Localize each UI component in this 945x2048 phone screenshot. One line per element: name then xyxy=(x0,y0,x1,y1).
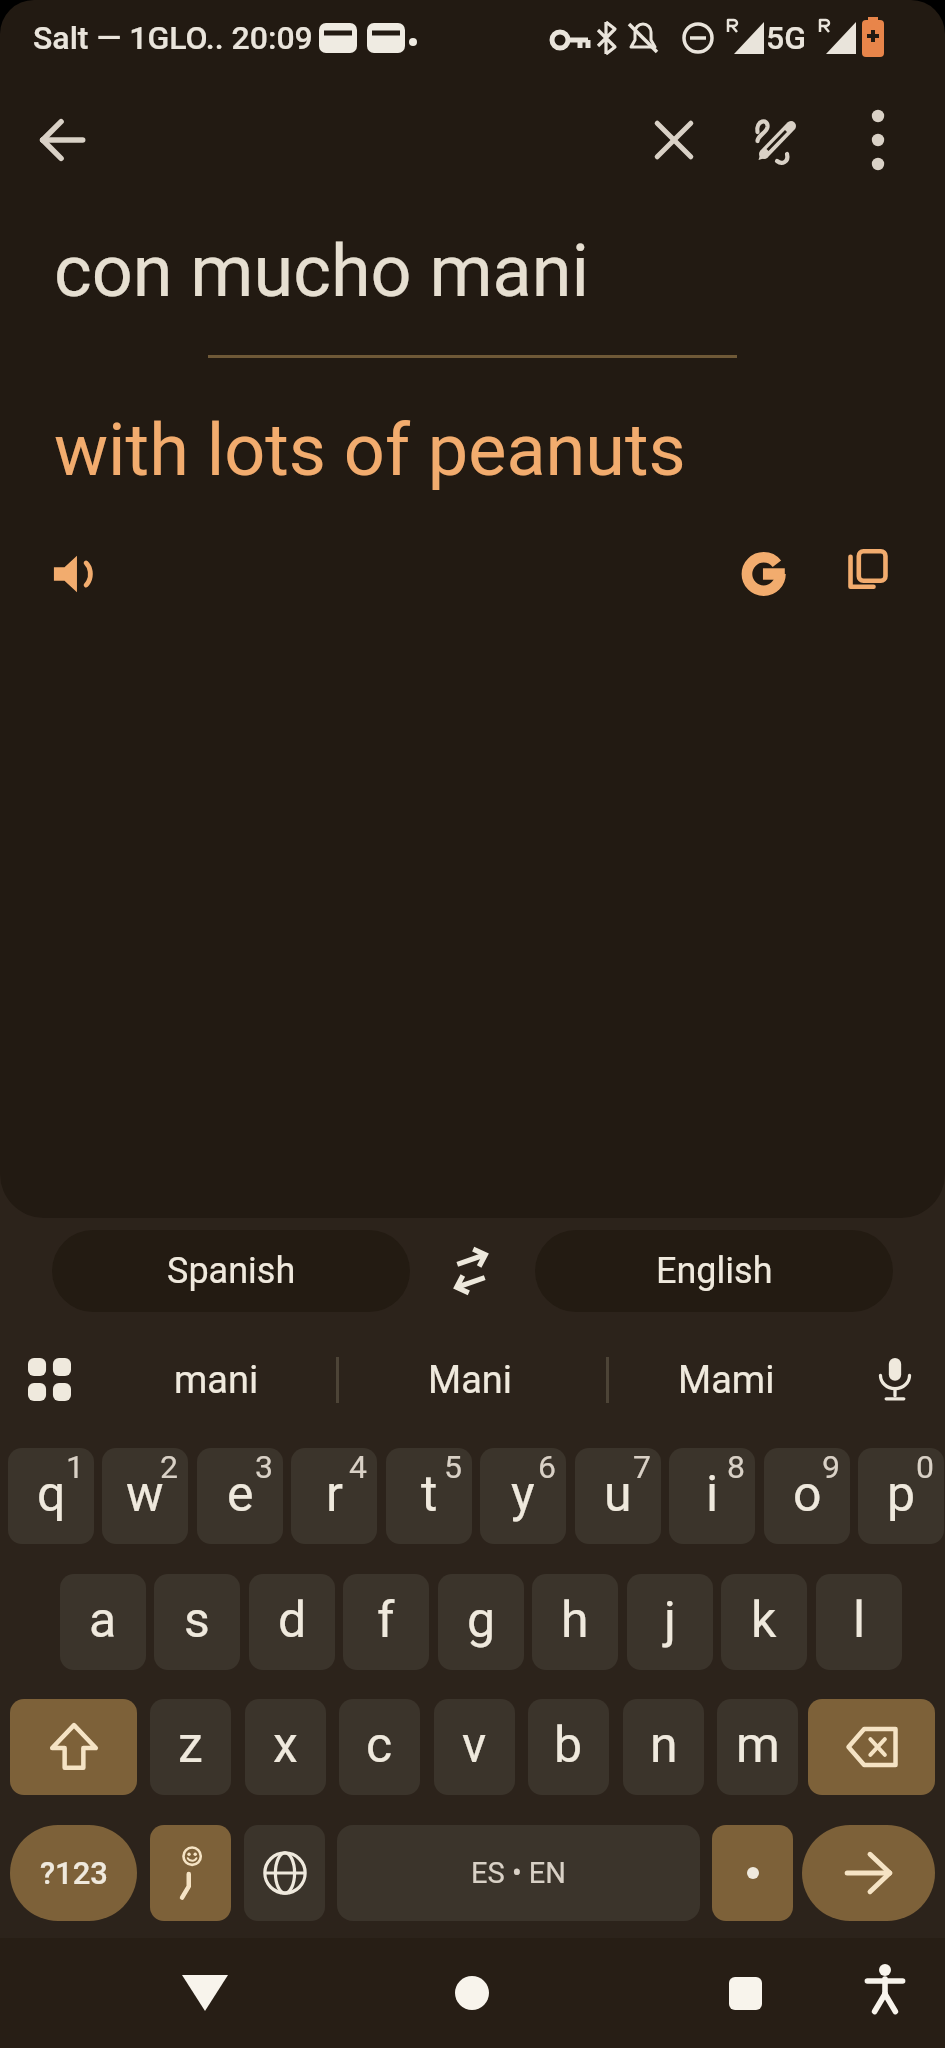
staticText: w xyxy=(126,1465,164,1524)
button[interactable]: h xyxy=(532,1574,618,1670)
button[interactable]: ES • EN xyxy=(337,1825,700,1921)
button[interactable]: s xyxy=(154,1574,240,1670)
staticText: s xyxy=(184,1591,210,1650)
button[interactable] xyxy=(437,1958,507,2028)
button[interactable] xyxy=(38,536,114,612)
staticText: Salt — 1GLO.. 20:09 xyxy=(33,19,313,57)
staticText: d xyxy=(278,1591,307,1650)
staticText: v xyxy=(462,1716,487,1775)
staticText: x xyxy=(273,1716,298,1775)
staticText: Mami xyxy=(678,1358,775,1403)
staticText: q xyxy=(37,1465,66,1524)
staticText: g xyxy=(467,1591,496,1650)
button[interactable]: k xyxy=(721,1574,807,1670)
button[interactable]: English xyxy=(535,1230,893,1312)
staticText: 4 xyxy=(349,1448,367,1486)
staticText: u xyxy=(604,1465,632,1524)
button[interactable]: p xyxy=(858,1448,944,1544)
button[interactable]: z xyxy=(150,1699,231,1795)
button[interactable] xyxy=(438,1240,504,1302)
button[interactable]: Mami xyxy=(620,1345,832,1415)
button[interactable]: o xyxy=(764,1448,850,1544)
button[interactable] xyxy=(24,102,100,178)
button[interactable]: f xyxy=(343,1574,429,1670)
button[interactable] xyxy=(850,1954,920,2024)
button[interactable] xyxy=(840,102,916,178)
button[interactable]: u xyxy=(575,1448,661,1544)
staticText: k xyxy=(751,1591,777,1650)
button[interactable]: i xyxy=(669,1448,755,1544)
button[interactable]: j xyxy=(627,1574,713,1670)
staticText: 2 xyxy=(160,1448,178,1486)
button[interactable]: m xyxy=(717,1699,798,1795)
staticText: r xyxy=(326,1465,343,1524)
staticText: ?123 xyxy=(40,1855,108,1891)
button[interactable]: c xyxy=(339,1699,420,1795)
button[interactable]: t xyxy=(386,1448,472,1544)
button[interactable] xyxy=(10,1699,137,1795)
button[interactable] xyxy=(738,102,814,178)
staticText: 5 xyxy=(444,1448,462,1486)
staticText: t xyxy=(421,1465,438,1524)
button[interactable] xyxy=(830,534,906,610)
button[interactable] xyxy=(170,1958,240,2028)
button[interactable]: a xyxy=(60,1574,146,1670)
button[interactable]: Mani xyxy=(364,1345,576,1415)
staticText: English xyxy=(656,1250,773,1292)
staticText: 0 xyxy=(916,1448,934,1486)
staticText: mani xyxy=(174,1358,259,1403)
staticText: p xyxy=(887,1465,916,1524)
staticText: m xyxy=(736,1716,780,1775)
button[interactable] xyxy=(712,1825,793,1921)
staticText: o xyxy=(793,1465,822,1524)
button[interactable]: r xyxy=(291,1448,377,1544)
staticText: 5G xyxy=(766,19,806,57)
button[interactable]: q xyxy=(8,1448,94,1544)
staticText: h xyxy=(561,1591,589,1650)
staticText: 6 xyxy=(538,1448,556,1486)
button[interactable]: l xyxy=(816,1574,902,1670)
button[interactable] xyxy=(636,102,712,178)
button[interactable] xyxy=(710,1958,780,2028)
button[interactable]: b xyxy=(528,1699,609,1795)
staticText: with lots of peanuts xyxy=(54,408,686,492)
staticText: 8 xyxy=(727,1448,745,1486)
staticText: i xyxy=(706,1465,719,1524)
button[interactable] xyxy=(808,1699,935,1795)
button[interactable]: ?123 xyxy=(10,1825,137,1921)
button[interactable]: v xyxy=(434,1699,515,1795)
staticText: n xyxy=(650,1716,678,1775)
button[interactable]: Spanish xyxy=(52,1230,410,1312)
button[interactable]: g xyxy=(438,1574,524,1670)
button[interactable]: w xyxy=(102,1448,188,1544)
button[interactable] xyxy=(860,1344,930,1414)
button[interactable] xyxy=(244,1825,325,1921)
staticText: b xyxy=(554,1716,583,1775)
staticText: y xyxy=(511,1465,535,1524)
button[interactable]: mani xyxy=(110,1345,322,1415)
button[interactable]: x xyxy=(245,1699,326,1795)
staticText: e xyxy=(227,1465,254,1524)
button[interactable]: y xyxy=(480,1448,566,1544)
button[interactable]: e xyxy=(197,1448,283,1544)
staticText: c xyxy=(366,1716,393,1775)
button[interactable] xyxy=(726,536,802,612)
staticText: j xyxy=(664,1591,676,1650)
staticText: l xyxy=(853,1591,866,1650)
staticText: Spanish xyxy=(167,1250,296,1292)
button[interactable]: d xyxy=(249,1574,335,1670)
staticText: a xyxy=(89,1591,117,1650)
staticText: 7 xyxy=(633,1448,651,1486)
staticText: z xyxy=(178,1716,203,1775)
staticText: con mucho mani xyxy=(54,229,590,313)
button[interactable] xyxy=(18,1348,80,1410)
staticText: 3 xyxy=(255,1448,273,1486)
staticText: 9 xyxy=(822,1448,840,1486)
button[interactable] xyxy=(802,1825,935,1921)
staticText: f xyxy=(377,1591,395,1650)
staticText: ES • EN xyxy=(471,1856,567,1890)
staticText: 1 xyxy=(66,1448,84,1486)
button[interactable]: n xyxy=(623,1699,704,1795)
button[interactable] xyxy=(150,1825,231,1921)
staticText: Mani xyxy=(428,1358,513,1403)
